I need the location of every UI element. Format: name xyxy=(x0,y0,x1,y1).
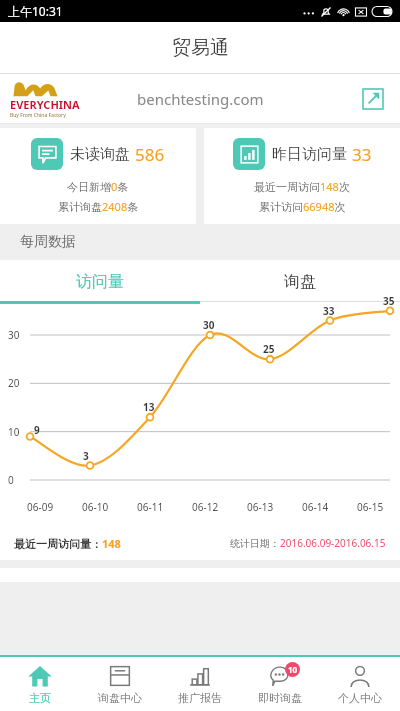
button[interactable]: 询盘 xyxy=(200,260,400,304)
staticText: 10 xyxy=(288,664,298,675)
button[interactable]: 未读询盘 xyxy=(0,128,196,224)
staticText: 询盘中心 xyxy=(98,691,142,705)
button[interactable]: 昨日访问量 xyxy=(204,128,400,224)
button[interactable]: 10 xyxy=(240,657,320,711)
button[interactable]: 主页 xyxy=(0,657,80,711)
staticText: 06-09 xyxy=(27,500,54,514)
staticText: 06-13 xyxy=(247,500,274,514)
staticText: 上午10:31 xyxy=(8,3,63,19)
staticText: 0 xyxy=(8,473,14,487)
staticText: 昨日访问量 xyxy=(272,145,347,164)
staticText: 最近一周访问量：148 xyxy=(14,536,121,551)
staticText: 每周数据 xyxy=(20,233,76,251)
staticText: 06-14 xyxy=(302,500,329,514)
staticText: 访问量 xyxy=(76,272,124,292)
staticText: 贸易通 xyxy=(172,36,229,60)
staticText: 33 xyxy=(323,304,335,318)
staticText: EVERYCHINA xyxy=(10,97,80,112)
staticText: 统计日期：2016.06.09-2016.06.15 xyxy=(230,536,386,550)
button[interactable]: 推广报告 xyxy=(160,657,240,711)
staticText: 30 xyxy=(203,318,215,332)
staticText: 06-12 xyxy=(192,500,219,514)
staticText: 3 xyxy=(83,449,89,463)
staticText: 询盘 xyxy=(284,272,316,292)
staticText: Buy From China Factory xyxy=(10,112,66,119)
staticText: 35 xyxy=(383,294,395,308)
staticText: 累计询盘2408条 xyxy=(58,199,139,214)
staticText: 06-15 xyxy=(357,500,384,514)
staticText: 9 xyxy=(34,423,40,437)
staticText: 未读询盘 xyxy=(70,145,130,164)
staticText: 累计访问66948次 xyxy=(259,199,346,214)
staticText: 10 xyxy=(8,425,20,439)
staticText: benchtesting.com xyxy=(137,89,264,109)
staticText: 最近一周访问148次 xyxy=(254,179,350,194)
button[interactable]: 个人中心 xyxy=(320,657,400,711)
staticText: 今日新增0条 xyxy=(67,179,129,194)
staticText: 30 xyxy=(8,328,20,342)
staticText: 586 xyxy=(135,143,165,166)
staticText: 33 xyxy=(352,143,372,166)
staticText: 13 xyxy=(143,400,155,414)
staticText: 即时询盘 xyxy=(258,691,302,705)
button[interactable]: 访问量 xyxy=(0,260,200,304)
staticText: 06-10 xyxy=(82,500,109,514)
staticText: 主页 xyxy=(29,691,51,705)
staticText: 20 xyxy=(8,376,20,390)
staticText: 06-11 xyxy=(137,500,164,514)
button[interactable]: 询盘中心 xyxy=(80,657,160,711)
staticText: 25 xyxy=(263,342,275,356)
staticText: 个人中心 xyxy=(338,691,382,705)
staticText: 推广报告 xyxy=(178,691,222,705)
button[interactable]: Open website xyxy=(358,84,388,114)
